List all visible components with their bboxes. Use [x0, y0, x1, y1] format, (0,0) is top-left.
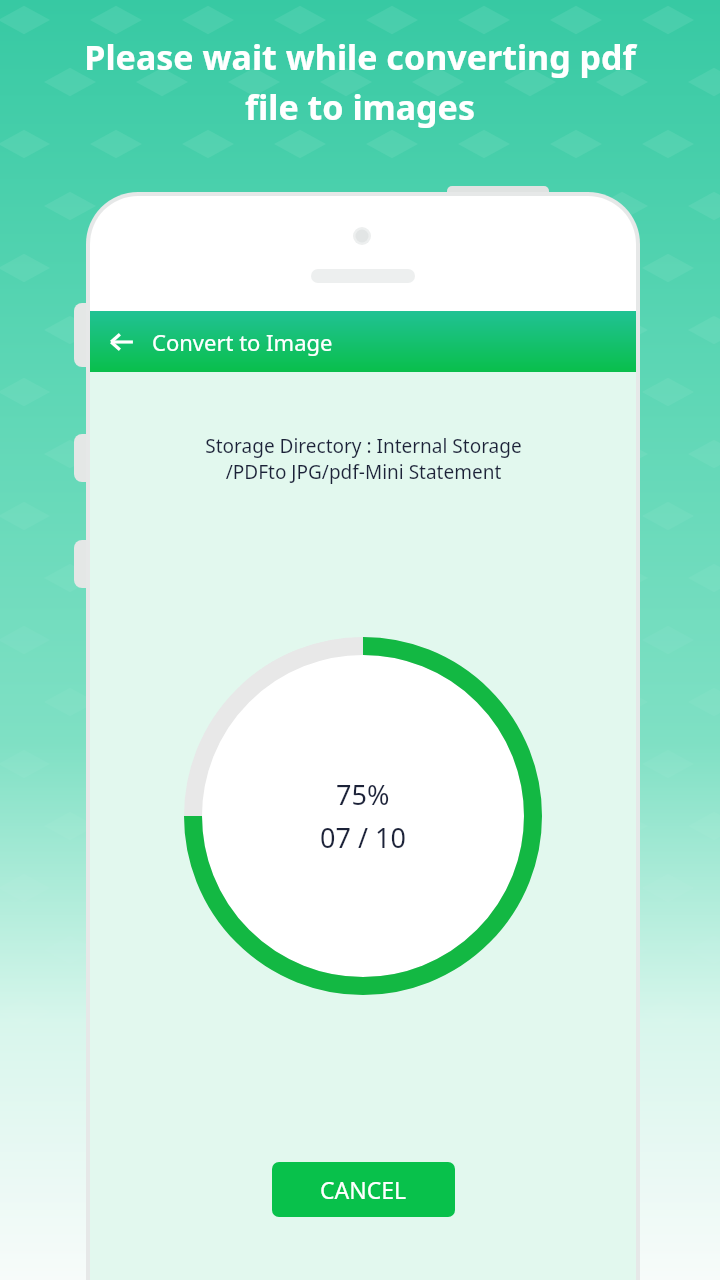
- staticText: 75%: [336, 776, 390, 813]
- staticText: Storage Directory : Internal Storage /PD…: [205, 433, 522, 485]
- button[interactable]: Back: [98, 318, 146, 366]
- staticText: Convert to Image: [152, 327, 333, 357]
- staticText: CANCEL: [320, 1174, 407, 1205]
- button[interactable]: CANCEL: [272, 1162, 455, 1217]
- staticText: 07 / 10: [320, 819, 406, 856]
- staticText: Please wait while converting pdf file to…: [84, 34, 636, 130]
